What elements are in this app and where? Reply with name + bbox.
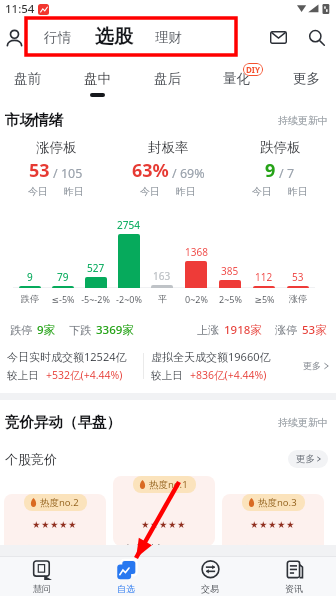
staticText: 53 [29, 158, 50, 183]
staticText: 527 [87, 261, 105, 275]
staticText: 热度no.2 [40, 496, 79, 509]
button[interactable]: 行情 [42, 23, 73, 52]
staticText: 1918家 [224, 322, 262, 338]
staticText: 2~5% [219, 293, 242, 305]
button[interactable]: 自选 [84, 557, 168, 596]
staticText: 持续更新中 [278, 416, 328, 429]
staticText: / 105 [53, 165, 83, 182]
staticText: 今日 [140, 185, 160, 198]
button[interactable]: Messages [260, 18, 296, 56]
staticText: 选股 [95, 25, 133, 49]
staticText: 跌停板 [260, 139, 301, 156]
staticText: 9 [27, 270, 33, 284]
staticText: 盘中 [84, 70, 111, 87]
staticText: ≥5% [254, 293, 275, 305]
staticText: -5~-2% [81, 293, 110, 305]
staticText: 热度no.3 [258, 496, 297, 509]
button[interactable]: 理财 [153, 23, 184, 52]
staticText: 量化 [223, 70, 250, 87]
staticText: 涨停 [289, 293, 307, 304]
staticText: 9家 [37, 322, 56, 338]
staticText: 涨停 [275, 323, 297, 337]
button[interactable]: 量化 [223, 56, 250, 110]
staticText: 更多 [296, 453, 315, 465]
staticText: 9 [265, 158, 276, 183]
button[interactable]: Profile [0, 18, 28, 56]
staticText: 112 [255, 270, 273, 284]
button[interactable]: 盘前 [14, 56, 41, 110]
staticText: 自选 [117, 583, 135, 594]
staticText: 虚拟全天成交额19660亿 [151, 349, 271, 364]
staticText: 跌停 [10, 323, 32, 337]
button[interactable]: 更多 [301, 360, 330, 371]
staticText: 3369家 [96, 322, 134, 338]
staticText: +532亿(+4.44%) [46, 368, 123, 382]
staticText: 昨日 [176, 185, 196, 198]
staticText: DIY [246, 64, 260, 75]
staticText: 理财 [155, 29, 182, 46]
staticText: 热度no.1 [149, 478, 188, 491]
staticText: 资讯 [285, 583, 303, 594]
staticText: 1368 [185, 245, 208, 259]
staticText: 79 [57, 270, 69, 284]
button[interactable]: 更多 [288, 450, 328, 468]
button[interactable]: 热度no.3 [222, 494, 324, 545]
staticText: 更多 [293, 70, 320, 87]
button[interactable]: 选股 [93, 23, 135, 51]
staticText: 盘后 [154, 70, 181, 87]
staticText: 63% [132, 158, 169, 183]
staticText: 0~2% [185, 293, 208, 305]
staticText: 交易 [201, 583, 219, 594]
staticText: 东方财富 [123, 543, 165, 545]
button[interactable]: 资讯 [252, 557, 336, 596]
staticText: 今日 [252, 185, 272, 198]
staticText: 昨日 [64, 185, 84, 198]
staticText: ★★★★★ [141, 519, 187, 530]
staticText: 行情 [44, 29, 71, 46]
staticText: 2754 [117, 218, 140, 232]
button[interactable]: 热度no.2 [4, 494, 106, 545]
staticText: +836亿(+4.44%) [190, 368, 267, 382]
staticText: 53家 [302, 322, 327, 338]
staticText: ★★★★★ [32, 519, 78, 530]
staticText: 385 [221, 264, 239, 278]
button[interactable]: 盘中 [84, 56, 111, 110]
staticText: / 69% [172, 165, 205, 182]
staticText: 上涨 [197, 323, 219, 337]
staticText: 今日实时成交额12524亿 [7, 349, 127, 364]
staticText: 盘前 [14, 70, 41, 87]
staticText: ★★★★★ [250, 519, 296, 530]
staticText: 163 [153, 269, 171, 283]
staticText: 较上日 [7, 369, 39, 382]
staticText: 封板率 [148, 139, 189, 156]
button[interactable]: 热度no.1 [113, 476, 215, 545]
staticText: 竞价异动（早盘） [5, 413, 121, 431]
staticText: 涨停板 [36, 139, 77, 156]
staticText: -2~0% [116, 293, 142, 305]
staticText: 53 [292, 270, 304, 284]
staticText: 市场情绪 [5, 111, 63, 129]
staticText: 个股竞价 [5, 451, 57, 467]
staticText: 昨日 [288, 185, 308, 198]
staticText: 跌停 [21, 293, 39, 304]
staticText: 持续更新中 [278, 114, 328, 127]
staticText: / 7 [279, 165, 295, 182]
staticText: 更多 [303, 360, 321, 371]
button[interactable]: 交易 [168, 557, 252, 596]
staticText: 平 [158, 293, 167, 304]
staticText: 较上日 [151, 369, 183, 382]
staticText: ≤-5% [51, 293, 75, 305]
staticText: 今日 [28, 185, 48, 198]
button[interactable]: Search [296, 18, 336, 56]
staticText: 下跌 [69, 323, 91, 337]
staticText: 11:54 [5, 1, 35, 17]
button[interactable]: 更多 [293, 56, 320, 110]
button[interactable]: 盘后 [154, 56, 181, 110]
staticText: 慧问 [33, 583, 51, 594]
button[interactable]: 慧问 [0, 557, 84, 596]
